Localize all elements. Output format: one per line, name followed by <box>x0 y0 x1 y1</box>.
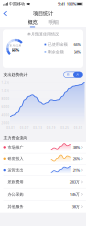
staticText: 283万 <box>70 179 80 185</box>
staticText: 66% <box>73 42 80 47</box>
staticText: 本月已用 <box>9 44 21 47</box>
button[interactable]: 概览 <box>25 19 40 28</box>
staticText: 办公采购 <box>7 192 23 197</box>
staticText: 34% <box>73 49 80 55</box>
button[interactable]: 研发投入 <box>0 153 86 164</box>
staticText: 38万 <box>72 204 80 209</box>
staticText: 差旅费用 <box>7 179 23 184</box>
staticText: 周 <box>67 73 70 76</box>
staticText: 66% <box>11 47 19 52</box>
button[interactable]: 返回 <box>1 8 10 19</box>
button[interactable]: 其他服务 <box>0 201 86 213</box>
staticText: 概览 <box>27 19 37 25</box>
staticText: 03-31 <box>74 126 83 130</box>
staticText: 1.2万 <box>1 81 9 84</box>
staticText: 研发投入 <box>7 156 23 161</box>
staticText: 本月预算使用情况 <box>27 32 59 37</box>
staticText: 2000 <box>1 121 9 125</box>
staticText: 26% <box>73 156 80 161</box>
button[interactable]: 周 <box>63 72 73 77</box>
staticText: 月 <box>76 73 79 76</box>
staticText: 38% <box>73 145 80 150</box>
staticText: 03-19 <box>47 126 56 130</box>
staticText: 21% <box>73 167 80 173</box>
staticText: 主力资金流向 <box>3 135 27 140</box>
staticText: 03-01 <box>6 126 15 130</box>
staticText: 运营支出 <box>7 168 23 173</box>
staticText: 1.0万 <box>1 89 9 93</box>
button[interactable]: 办公采购 <box>0 188 86 200</box>
staticText: 剩余金额 <box>48 49 64 54</box>
button[interactable]: 差旅费用 <box>0 176 86 188</box>
staticText: 项目统计 <box>33 10 53 17</box>
staticText: 146万 <box>70 192 80 197</box>
staticText: 03-13 <box>33 126 42 130</box>
button[interactable]: 运营支出 <box>0 165 86 176</box>
staticText: 9:41 <box>58 1 65 7</box>
button[interactable]: 明细 <box>46 19 61 28</box>
button[interactable]: 月 <box>73 72 82 77</box>
staticText: 已使用金额 <box>48 42 68 47</box>
staticText: 6000 <box>1 105 9 109</box>
staticText: 市场推广 <box>7 145 23 150</box>
staticText: 03-07 <box>20 126 29 130</box>
staticText: 100% <box>67 1 76 7</box>
button[interactable]: 市场推广 <box>0 142 86 153</box>
staticText: 中国移动 <box>9 1 25 6</box>
staticText: 明细 <box>48 19 58 25</box>
staticText: 8000 <box>1 97 9 101</box>
staticText: 4000 <box>1 113 9 117</box>
staticText: 支出趋势统计 <box>3 72 27 77</box>
staticText: 03-25 <box>60 126 69 130</box>
staticText: 其他服务 <box>7 204 23 209</box>
